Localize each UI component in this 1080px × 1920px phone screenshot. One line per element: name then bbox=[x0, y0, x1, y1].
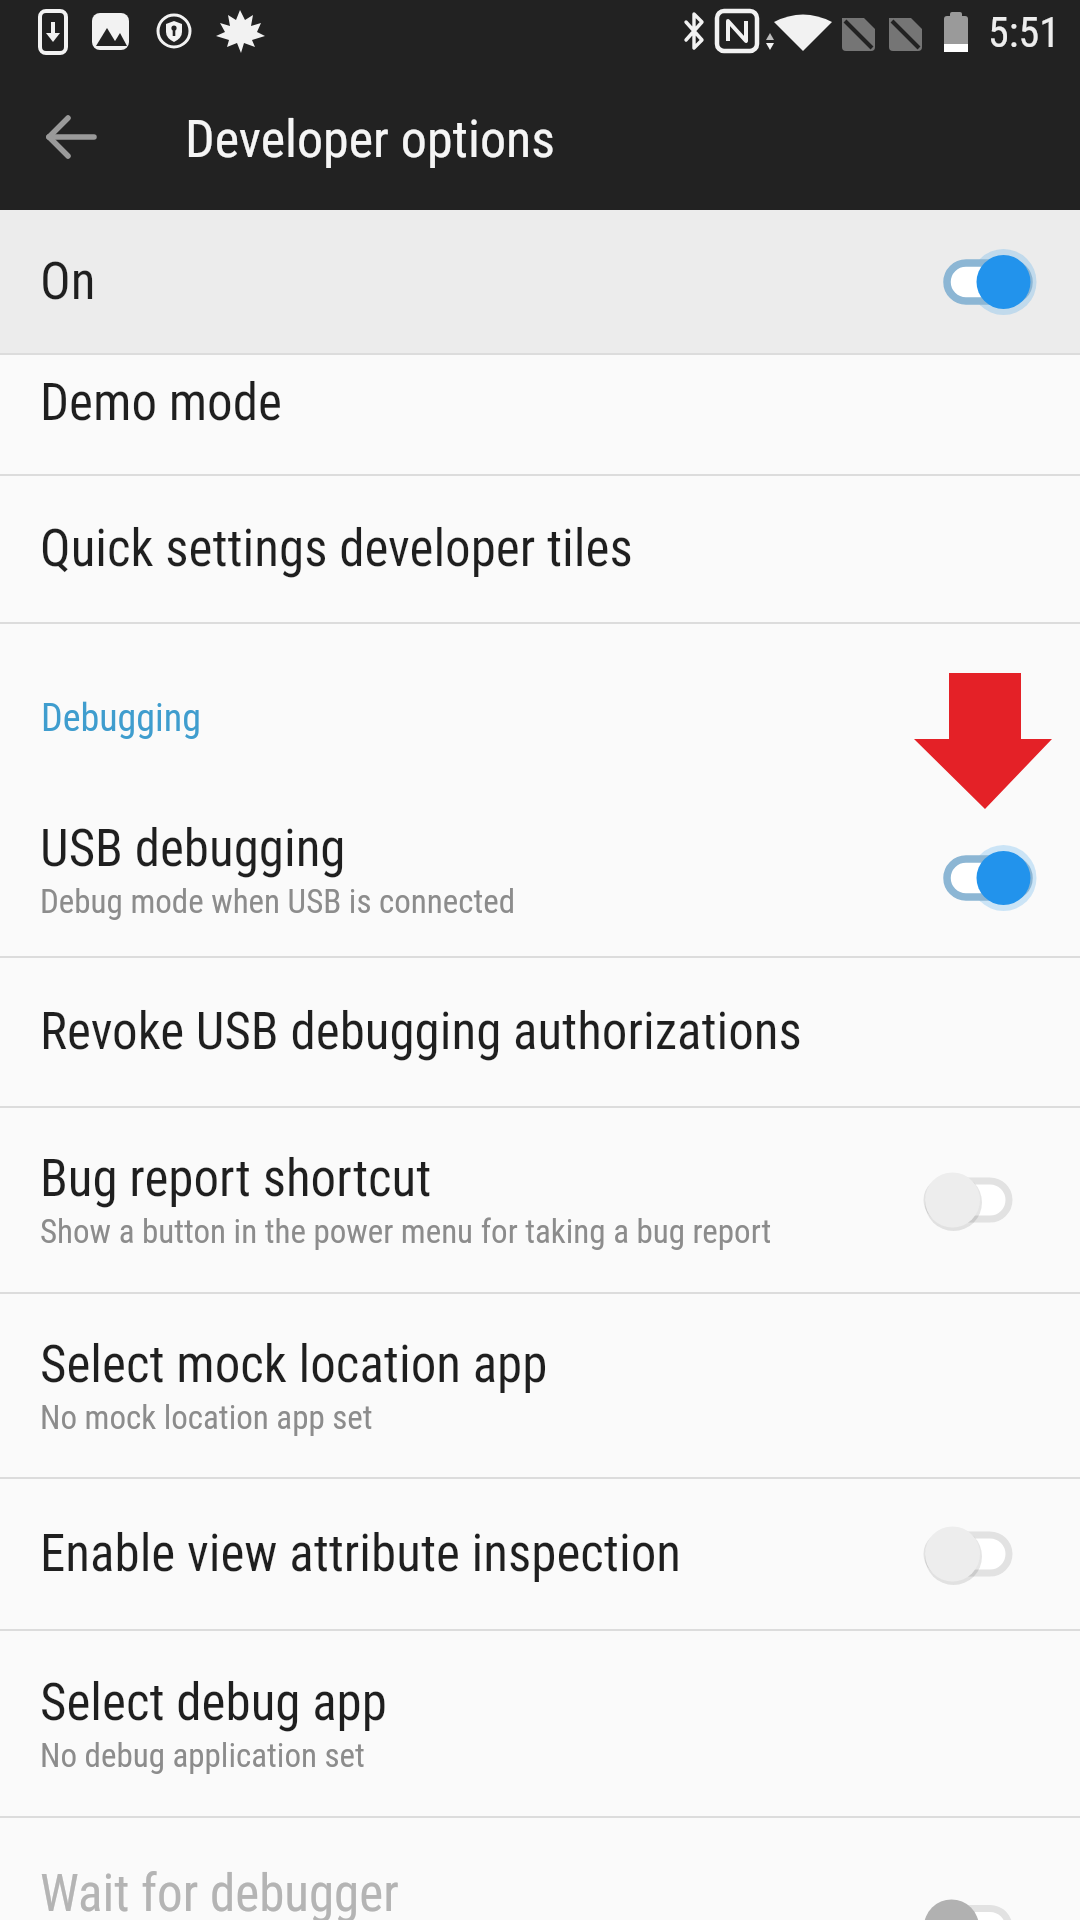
button[interactable]: Enable view attribute inspection bbox=[0, 1479, 1080, 1629]
staticText: Developer options bbox=[185, 109, 555, 170]
button[interactable]: Bug report shortcut bbox=[0, 1108, 1080, 1292]
staticText: On bbox=[40, 252, 96, 312]
button[interactable]: USB debugging bbox=[0, 800, 1080, 956]
button[interactable]: Select mock location app bbox=[0, 1294, 1080, 1477]
staticText: Show a button in the power menu for taki… bbox=[40, 1212, 772, 1251]
staticText: Select debug app bbox=[40, 1673, 387, 1733]
button[interactable] bbox=[924, 1523, 1030, 1585]
button[interactable] bbox=[924, 847, 1030, 909]
staticText: Revoke USB debugging authorizations bbox=[40, 1002, 802, 1062]
staticText: No mock location app set bbox=[40, 1398, 373, 1437]
button[interactable] bbox=[924, 1169, 1030, 1231]
button[interactable] bbox=[28, 95, 116, 183]
button[interactable]: Revoke USB debugging authorizations bbox=[0, 958, 1080, 1106]
staticText: Bug report shortcut bbox=[40, 1149, 432, 1209]
staticText: No debug application set bbox=[40, 1736, 365, 1775]
button[interactable]: Wait for debugger bbox=[0, 1818, 1080, 1920]
staticText: Debug mode when USB is connected bbox=[40, 882, 516, 921]
button[interactable] bbox=[924, 251, 1030, 313]
staticText: Enable view attribute inspection bbox=[40, 1524, 681, 1584]
staticText: USB debugging bbox=[40, 819, 346, 879]
staticText: Debugging bbox=[41, 696, 201, 741]
button[interactable]: On bbox=[0, 210, 1080, 353]
staticText: Demo mode bbox=[40, 373, 282, 433]
staticText: Quick settings developer tiles bbox=[40, 519, 633, 579]
staticText: Wait for debugger bbox=[40, 1864, 399, 1920]
button[interactable]: Quick settings developer tiles bbox=[0, 476, 1080, 622]
staticText: Select mock location app bbox=[40, 1335, 548, 1395]
staticText: 5:51 bbox=[988, 8, 1061, 57]
button[interactable]: Demo mode bbox=[0, 355, 1080, 474]
button[interactable]: Select debug app bbox=[0, 1631, 1080, 1816]
